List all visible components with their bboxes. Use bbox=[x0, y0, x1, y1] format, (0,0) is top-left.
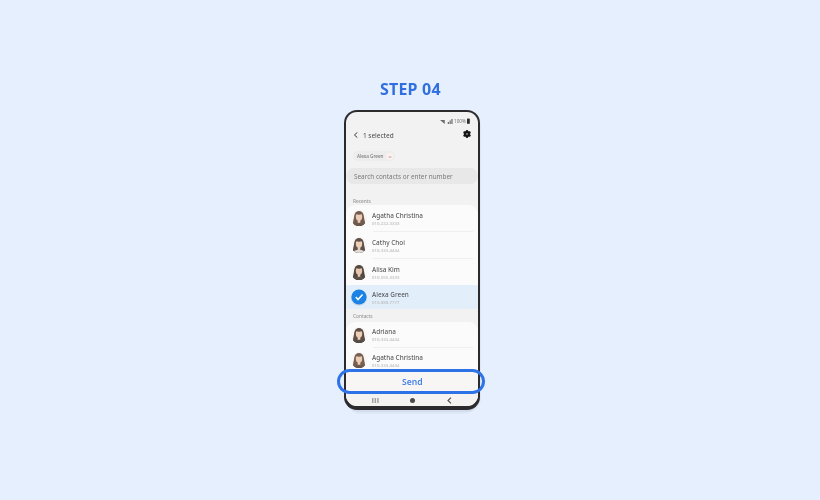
button[interactable]: Agatha Christina bbox=[346, 348, 478, 372]
staticText: Agatha Christina bbox=[372, 353, 424, 362]
staticText: Alexa Green bbox=[357, 153, 384, 159]
staticText: Search contacts or enter number bbox=[354, 172, 453, 181]
button[interactable]: Alexa Green bbox=[346, 285, 478, 309]
button[interactable]: Alisa Kim bbox=[346, 259, 478, 285]
button[interactable]: Home bbox=[400, 394, 424, 406]
staticText: 010-222-3333 bbox=[372, 220, 400, 226]
staticText: Alisa Kim bbox=[372, 265, 400, 274]
button[interactable]: Cathy Choi bbox=[346, 232, 478, 258]
button[interactable]: Settings bbox=[460, 127, 474, 141]
staticText: Adriana bbox=[372, 327, 396, 336]
staticText: 010-888-7777 bbox=[372, 299, 400, 305]
staticText: Agatha Christina bbox=[372, 211, 424, 220]
staticText: Recents bbox=[353, 198, 371, 205]
button[interactable]: Alexa Green bbox=[353, 151, 395, 161]
staticText: Cathy Choi bbox=[372, 238, 405, 247]
button[interactable]: Recents bbox=[363, 394, 387, 406]
staticText: 010-555-3333 bbox=[372, 274, 400, 280]
staticText: 1 selected bbox=[363, 131, 394, 140]
staticText: 010-333-4444 bbox=[372, 336, 400, 342]
staticText: 100% bbox=[454, 118, 466, 124]
button[interactable]: Agatha Christina bbox=[346, 205, 478, 231]
staticText: STEP 04 bbox=[380, 78, 441, 100]
button[interactable]: Back bbox=[437, 394, 461, 406]
staticText: 010-333-4444 bbox=[372, 247, 400, 253]
button[interactable]: Adriana bbox=[346, 322, 478, 347]
button[interactable]: Search contacts or enter number bbox=[346, 168, 478, 184]
button[interactable]: Back bbox=[349, 128, 363, 142]
staticText: Send bbox=[402, 376, 423, 388]
staticText: 010-333-4444 bbox=[372, 362, 400, 368]
button[interactable]: Send bbox=[346, 371, 478, 393]
staticText: Contacts bbox=[353, 313, 373, 320]
staticText: Alexa Green bbox=[372, 290, 409, 299]
